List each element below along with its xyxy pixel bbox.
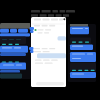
button[interactable]: Previous screenshot — [0, 23, 31, 79]
button[interactable]: Screenshot — [31, 17, 66, 87]
button[interactable]: Next screenshot — [68, 24, 96, 82]
